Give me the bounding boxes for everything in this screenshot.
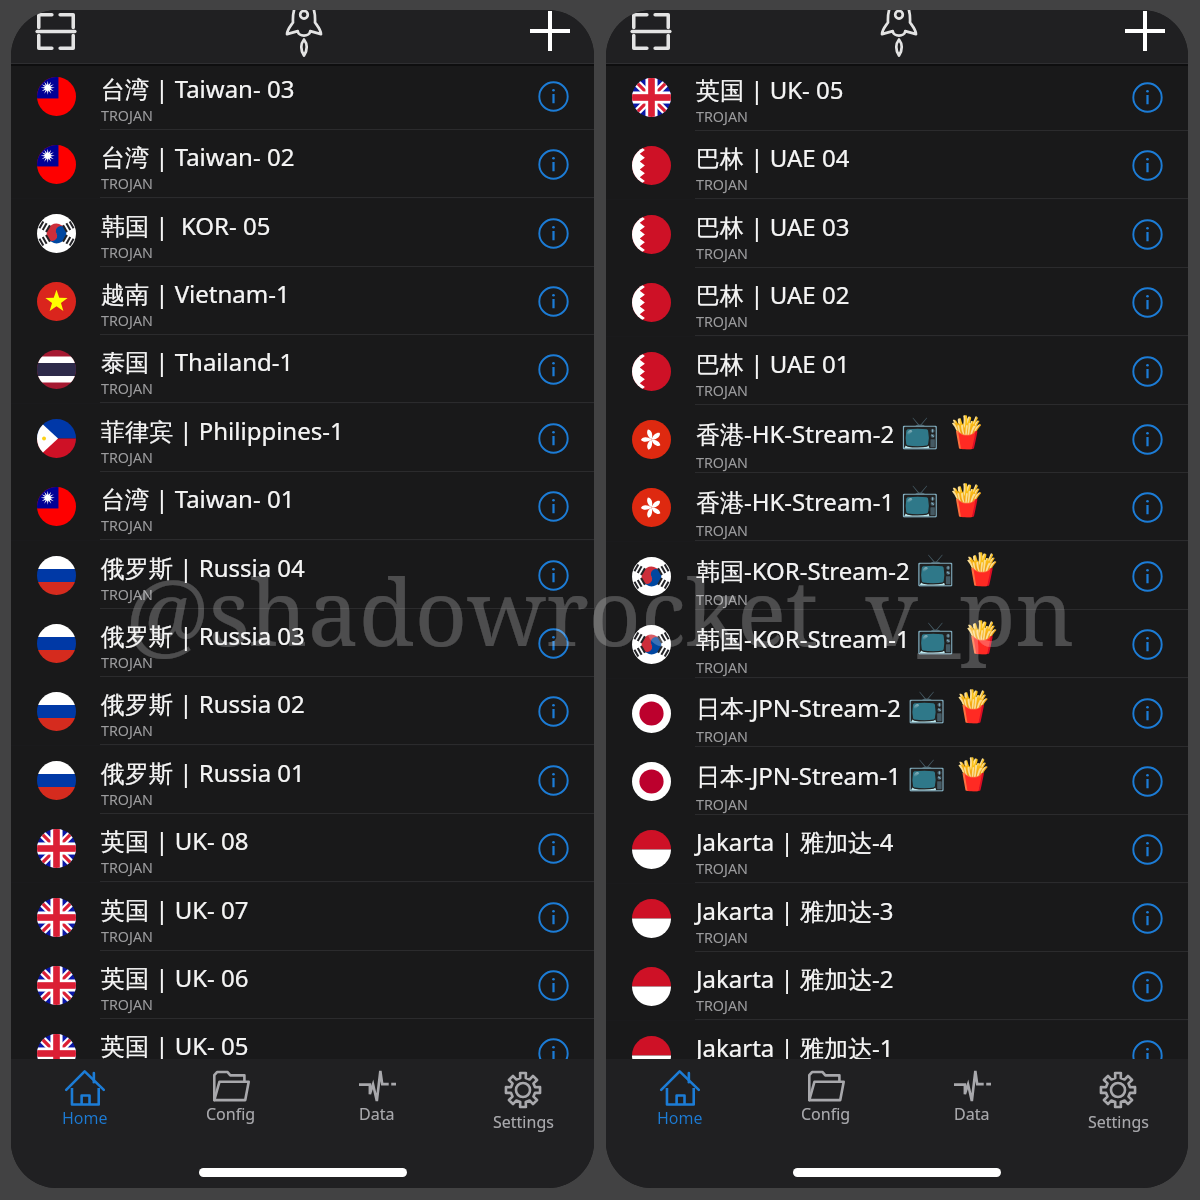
button[interactable]: 巴林 | UAE 02 xyxy=(606,268,1188,336)
button[interactable]: Rocket xyxy=(869,10,929,59)
button[interactable]: Info xyxy=(1123,73,1171,121)
button[interactable]: Jakarta | 雅加达-2 xyxy=(606,952,1188,1020)
button[interactable]: 台湾 | Taiwan- 02 xyxy=(11,130,594,198)
button[interactable]: Info xyxy=(529,551,577,599)
staticText: 英国 | UK- 08 xyxy=(101,824,249,857)
button[interactable]: Info xyxy=(529,209,577,257)
button[interactable]: Settings xyxy=(468,1059,578,1135)
button[interactable]: Info xyxy=(1123,141,1171,189)
button[interactable]: 英国 | UK- 07 xyxy=(11,883,594,951)
button[interactable]: Info xyxy=(1123,620,1171,668)
staticText: 巴林 | UAE 01 xyxy=(696,347,850,380)
button[interactable]: Jakarta | 雅加达-3 xyxy=(606,884,1188,952)
button[interactable]: 越南 | Vietnam-1 xyxy=(11,267,594,335)
button[interactable]: Info xyxy=(529,893,577,941)
staticText: Home xyxy=(62,1107,108,1129)
staticText: 俄罗斯 | Russia 04 xyxy=(101,551,305,584)
staticText: TROJAN xyxy=(696,727,748,746)
button[interactable]: Info xyxy=(529,482,577,530)
staticText: 韩国-KOR-Stream-1 📺 🍟 xyxy=(696,615,1002,657)
button[interactable]: Info xyxy=(529,277,577,325)
button[interactable]: Info xyxy=(529,345,577,393)
button[interactable]: Info xyxy=(1123,1031,1171,1059)
staticText: TROJAN xyxy=(696,928,748,947)
button[interactable]: Info xyxy=(1123,825,1171,873)
button[interactable]: Home xyxy=(30,1059,140,1135)
button[interactable]: 韩国 | KOR- 05 xyxy=(11,199,594,267)
staticText: TROJAN xyxy=(696,107,748,126)
button[interactable]: Data xyxy=(322,1059,432,1135)
staticText: 香港-HK-Stream-2 📺 🍟 xyxy=(696,410,986,452)
staticText: 菲律宾 | Philippines-1 xyxy=(101,414,344,447)
button[interactable]: Config xyxy=(771,1059,881,1135)
button[interactable]: 韩国-KOR-Stream-1 📺 🍟 xyxy=(606,610,1188,678)
staticText: 日本-JPN-Stream-2 📺 🍟 xyxy=(696,684,993,726)
staticText: Data xyxy=(359,1103,395,1125)
button[interactable]: Info xyxy=(529,414,577,462)
button[interactable]: Jakarta | 雅加达-1 xyxy=(606,1021,1188,1059)
button[interactable]: 泰国 | Thailand-1 xyxy=(11,335,594,403)
staticText: TROJAN xyxy=(101,790,153,809)
button[interactable]: Info xyxy=(529,619,577,667)
button[interactable]: 香港-HK-Stream-2 📺 🍟 xyxy=(606,405,1188,473)
button[interactable]: Info xyxy=(529,756,577,804)
button[interactable]: Jakarta | 雅加达-4 xyxy=(606,815,1188,883)
button[interactable]: Info xyxy=(1123,894,1171,942)
button[interactable]: 俄罗斯 | Russia 03 xyxy=(11,609,594,677)
button[interactable]: Rocket xyxy=(274,10,334,59)
button[interactable]: Info xyxy=(1123,415,1171,463)
button[interactable]: 英国 | UK- 05 xyxy=(11,1019,594,1059)
button[interactable]: Scan QR code xyxy=(30,10,82,57)
button[interactable]: Add xyxy=(1119,10,1171,57)
button[interactable]: Config xyxy=(176,1059,286,1135)
button[interactable]: Home xyxy=(625,1059,735,1135)
button[interactable]: Data xyxy=(917,1059,1027,1135)
staticText: @shadowrocket v_pn xyxy=(125,549,1075,673)
button[interactable]: 俄罗斯 | Russia 02 xyxy=(11,677,594,745)
button[interactable]: Info xyxy=(529,72,577,120)
button[interactable]: Add xyxy=(524,10,576,57)
staticText: 台湾 | Taiwan- 01 xyxy=(101,482,295,515)
button[interactable]: 台湾 | Taiwan- 01 xyxy=(11,472,594,540)
staticText: TROJAN xyxy=(696,381,748,400)
button[interactable]: 巴林 | UAE 03 xyxy=(606,200,1188,268)
button[interactable]: 韩国-KOR-Stream-2 📺 🍟 xyxy=(606,542,1188,610)
button[interactable]: Scan QR code xyxy=(625,10,677,57)
button[interactable]: Info xyxy=(529,824,577,872)
staticText: 台湾 | Taiwan- 03 xyxy=(101,72,295,105)
button[interactable]: Info xyxy=(1123,552,1171,600)
button[interactable]: 台湾 | Taiwan- 03 xyxy=(11,64,594,130)
button[interactable]: 巴林 | UAE 04 xyxy=(606,131,1188,199)
button[interactable]: 巴林 | UAE 01 xyxy=(606,337,1188,405)
button[interactable]: Settings xyxy=(1063,1059,1173,1135)
button[interactable]: 俄罗斯 | Russia 01 xyxy=(11,746,594,814)
button[interactable]: 日本-JPN-Stream-1 📺 🍟 xyxy=(606,747,1188,815)
button[interactable]: 英国 | UK- 06 xyxy=(11,951,594,1019)
staticText: Jakarta | 雅加达-1 xyxy=(696,1031,894,1059)
button[interactable]: Info xyxy=(529,1029,577,1059)
staticText: TROJAN xyxy=(101,995,153,1014)
button[interactable]: Info xyxy=(1123,962,1171,1010)
button[interactable]: Info xyxy=(529,687,577,735)
button[interactable]: 英国 | UK- 08 xyxy=(11,814,594,882)
staticText: Jakarta | 雅加达-3 xyxy=(696,894,894,927)
button[interactable]: 香港-HK-Stream-1 📺 🍟 xyxy=(606,473,1188,541)
button[interactable]: Info xyxy=(529,140,577,188)
staticText: TROJAN xyxy=(696,453,748,472)
button[interactable]: 日本-JPN-Stream-2 📺 🍟 xyxy=(606,679,1188,747)
button[interactable]: Info xyxy=(1123,483,1171,531)
button[interactable]: Info xyxy=(529,961,577,1009)
button[interactable]: Info xyxy=(1123,278,1171,326)
button[interactable]: 菲律宾 | Philippines-1 xyxy=(11,404,594,472)
staticText: 英国 | UK- 07 xyxy=(101,893,249,926)
staticText: 英国 | UK- 05 xyxy=(101,1029,249,1059)
button[interactable]: Info xyxy=(1123,757,1171,805)
button[interactable]: Info xyxy=(1123,347,1171,395)
button[interactable]: 俄罗斯 | Russia 04 xyxy=(11,541,594,609)
button[interactable]: Info xyxy=(1123,210,1171,258)
staticText: TROJAN xyxy=(696,996,748,1015)
staticText: Jakarta | 雅加达-4 xyxy=(696,825,894,858)
button[interactable]: Info xyxy=(1123,689,1171,737)
staticText: Home xyxy=(657,1107,703,1129)
button[interactable]: 英国 | UK- 05 xyxy=(606,64,1188,131)
